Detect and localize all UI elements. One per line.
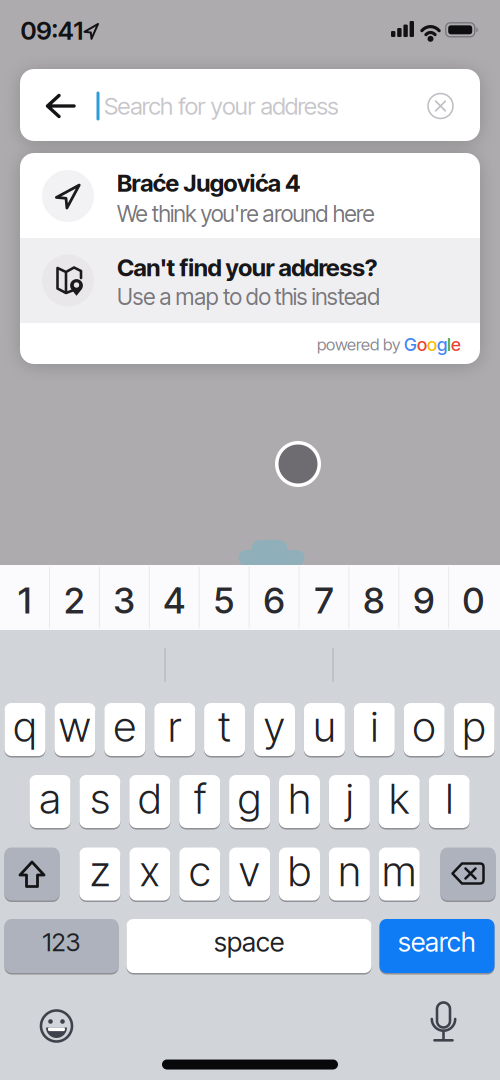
staticText: v xyxy=(239,846,261,896)
button[interactable]: j xyxy=(329,774,370,829)
staticText: a xyxy=(39,773,61,824)
staticText: e xyxy=(451,334,461,355)
staticText: e xyxy=(113,701,136,752)
staticText: search xyxy=(398,926,476,958)
button[interactable]: w xyxy=(54,702,95,757)
button[interactable]: v xyxy=(229,847,270,902)
button[interactable]: 6 xyxy=(249,568,298,632)
staticText: 3 xyxy=(113,579,135,622)
staticText: 9 xyxy=(413,579,434,622)
button[interactable]: 0 xyxy=(449,568,498,632)
staticText: q xyxy=(13,701,37,752)
staticText: n xyxy=(338,846,361,896)
button[interactable]: 4 xyxy=(150,568,199,632)
staticText: l xyxy=(445,773,453,824)
staticText: 8 xyxy=(363,579,384,622)
staticText: p xyxy=(462,701,486,752)
button[interactable]: z xyxy=(79,847,120,902)
button[interactable]: p xyxy=(454,702,495,757)
button[interactable]: m xyxy=(379,847,420,902)
button[interactable]: Braće Jugovića 4 xyxy=(20,153,480,238)
button[interactable]: d xyxy=(129,774,170,829)
button[interactable]: Shift xyxy=(4,847,59,902)
button[interactable]: 2 xyxy=(50,568,99,632)
button[interactable]: s xyxy=(79,774,120,829)
button[interactable]: Dictate xyxy=(421,1001,465,1045)
button[interactable]: Can't find your address? xyxy=(20,238,480,323)
button[interactable]: g xyxy=(229,774,270,829)
staticText: t xyxy=(218,701,232,752)
button[interactable]: i xyxy=(354,702,395,757)
button[interactable]: 7 xyxy=(299,568,348,632)
button[interactable]: n xyxy=(329,847,370,902)
button[interactable]: Back xyxy=(38,84,82,128)
staticText: 0 xyxy=(463,579,485,622)
button[interactable]: search xyxy=(379,918,494,974)
staticText: space xyxy=(214,926,284,958)
button[interactable]: h xyxy=(279,774,320,829)
button[interactable]: 5 xyxy=(200,568,249,632)
button[interactable]: t xyxy=(204,702,245,757)
staticText: 123 xyxy=(42,927,80,957)
staticText: f xyxy=(193,773,206,824)
staticText: 6 xyxy=(263,579,284,622)
staticText: 4 xyxy=(163,579,185,622)
staticText: 5 xyxy=(214,579,235,622)
staticText: l xyxy=(447,334,451,355)
staticText: g xyxy=(437,334,447,355)
staticText: w xyxy=(58,701,91,752)
staticText: powered by xyxy=(317,334,404,355)
button[interactable]: y xyxy=(254,702,295,757)
staticText: j xyxy=(345,773,353,824)
staticText: u xyxy=(313,701,336,752)
button[interactable]: 1 xyxy=(0,568,49,632)
button[interactable]: u xyxy=(304,702,345,757)
button[interactable]: c xyxy=(179,847,220,902)
button[interactable]: a xyxy=(29,774,70,829)
staticText: o xyxy=(427,334,437,355)
button[interactable]: 8 xyxy=(349,568,398,632)
button[interactable]: o xyxy=(404,702,445,757)
staticText: 7 xyxy=(314,579,333,622)
staticText: o xyxy=(417,334,427,355)
staticText: Search for your address xyxy=(104,91,338,120)
button[interactable]: Emoji xyxy=(34,1004,78,1048)
staticText: d xyxy=(138,773,162,824)
staticText: o xyxy=(412,701,436,752)
staticText: 1 xyxy=(18,579,31,622)
staticText: z xyxy=(89,846,110,896)
staticText: x xyxy=(139,846,160,896)
staticText: 09:41 xyxy=(21,15,83,46)
button[interactable]: space xyxy=(126,918,371,974)
button[interactable]: r xyxy=(154,702,195,757)
staticText: b xyxy=(287,846,311,896)
button[interactable]: Clear search text xyxy=(418,84,462,128)
button[interactable]: l xyxy=(429,774,470,829)
staticText: Can't find your address? xyxy=(117,253,378,282)
staticText: g xyxy=(238,773,262,824)
button[interactable]: Delete xyxy=(440,847,495,902)
button[interactable]: x xyxy=(129,847,170,902)
button[interactable]: f xyxy=(179,774,220,829)
staticText: Use a map to do this instead xyxy=(117,283,380,310)
button[interactable]: q xyxy=(4,702,45,757)
button[interactable]: b xyxy=(279,847,320,902)
staticText: k xyxy=(389,773,410,824)
staticText: Braće Jugovića 4 xyxy=(117,168,300,197)
staticText: 2 xyxy=(64,579,85,622)
button[interactable]: 9 xyxy=(399,568,448,632)
staticText: G xyxy=(404,334,417,355)
staticText: s xyxy=(90,773,110,824)
button[interactable]: e xyxy=(104,702,145,757)
button[interactable]: k xyxy=(379,774,420,829)
staticText: c xyxy=(189,846,211,896)
staticText: m xyxy=(382,846,417,896)
staticText: r xyxy=(168,701,182,752)
button[interactable]: 3 xyxy=(100,568,149,632)
button[interactable]: 123 xyxy=(4,918,118,974)
staticText: h xyxy=(288,773,311,824)
staticText: We think you're around here xyxy=(117,200,375,227)
staticText: y xyxy=(263,701,285,752)
staticText: i xyxy=(370,701,378,752)
